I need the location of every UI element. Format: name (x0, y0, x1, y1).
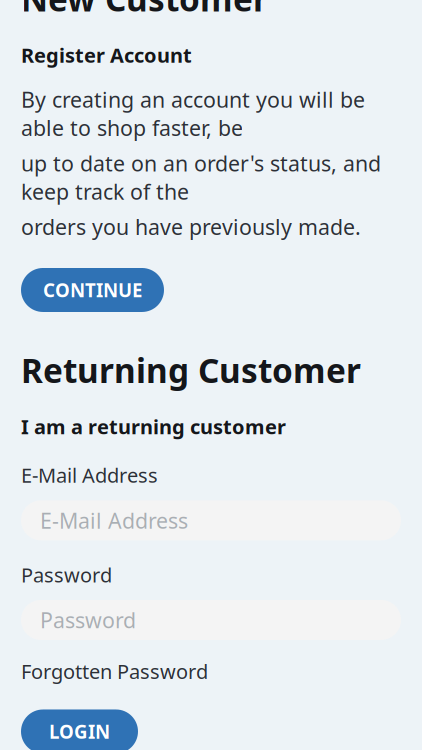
staticText: up to date on an order's status, and kee… (21, 149, 381, 206)
button[interactable]: Forgotten Password (21, 658, 208, 684)
staticText: Password (40, 606, 136, 634)
staticText: Returning Customer (21, 348, 361, 392)
staticText: E-Mail Address (21, 462, 158, 488)
staticText: E-Mail Address (40, 506, 188, 534)
staticText: Register Account (21, 42, 192, 68)
button[interactable]: E-Mail Address (21, 500, 401, 540)
staticText: orders you have previously made. (21, 213, 361, 241)
staticText: I am a returning customer (21, 413, 286, 440)
button[interactable]: Password (21, 600, 401, 640)
staticText: Password (21, 561, 112, 588)
button[interactable]: CONTINUE (21, 268, 164, 312)
staticText: Forgotten Password (21, 658, 208, 684)
staticText: CONTINUE (43, 278, 142, 302)
button[interactable]: LOGIN (21, 709, 138, 750)
staticText: By creating an account you will be able … (21, 85, 365, 142)
staticText: New Customer (21, 0, 268, 21)
staticText: LOGIN (49, 719, 110, 744)
